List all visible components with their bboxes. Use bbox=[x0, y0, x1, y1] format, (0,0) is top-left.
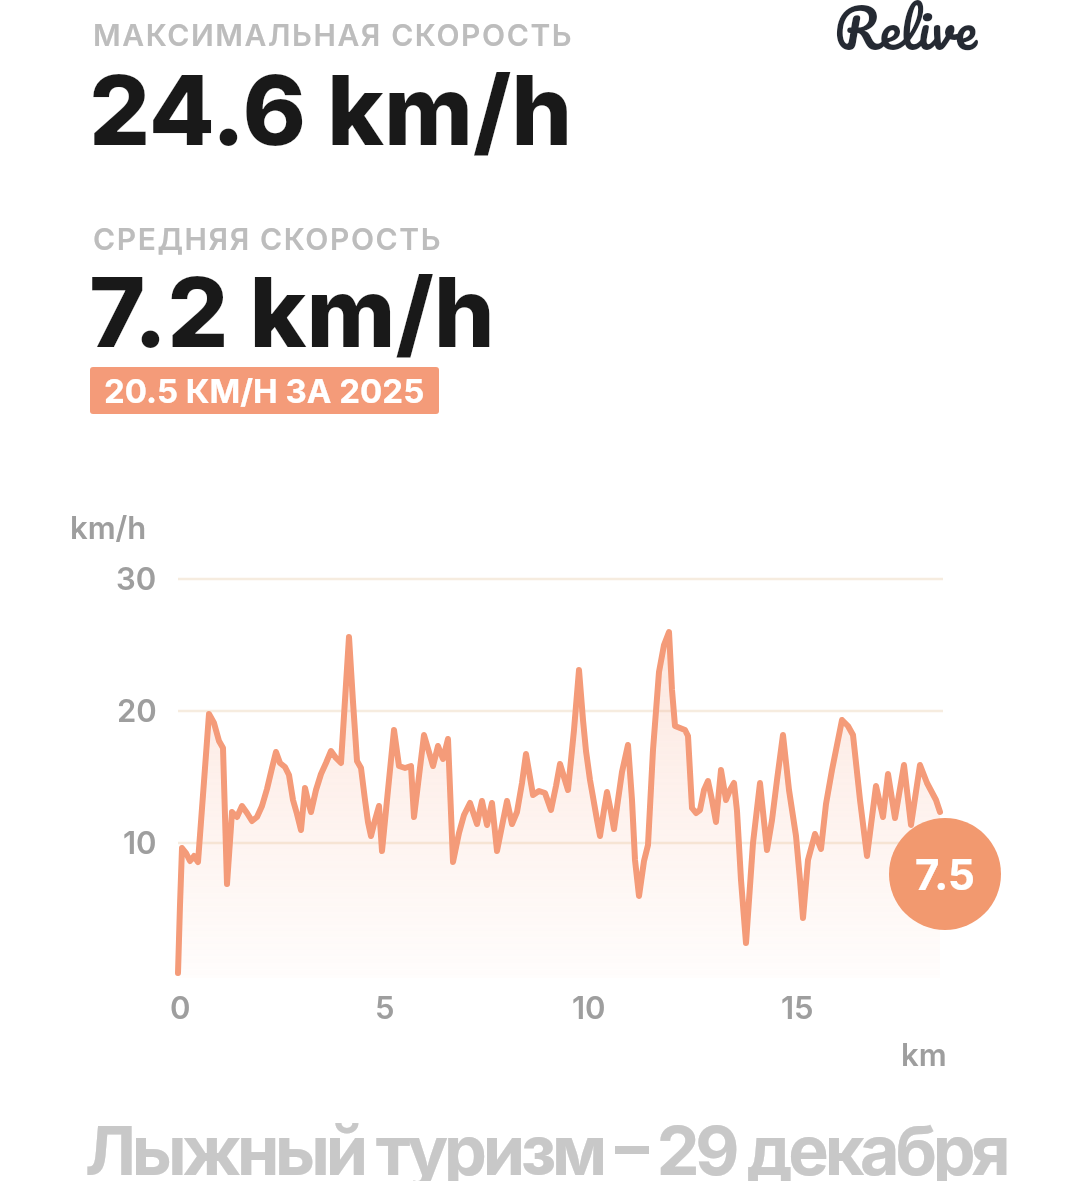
staticText: 20 bbox=[117, 692, 157, 730]
staticText: 20.5 КМ/Н ЗА 2025 bbox=[104, 371, 425, 411]
staticText: МАКСИМАЛЬНАЯ СКОРОСТЬ bbox=[93, 17, 574, 53]
staticText: 15 bbox=[781, 989, 814, 1027]
staticText: 0 bbox=[170, 989, 191, 1027]
staticText: km bbox=[901, 1036, 947, 1074]
staticText: Лыжный туризм – 29 декабря bbox=[85, 1109, 1007, 1181]
button[interactable]: 7.5 bbox=[889, 818, 1001, 930]
staticText: 7.2 km/h bbox=[89, 254, 495, 370]
staticText: 10 bbox=[572, 989, 606, 1027]
button[interactable]: 20.5 КМ/Н ЗА 2025 bbox=[90, 367, 439, 414]
staticText: 5 bbox=[375, 989, 395, 1027]
staticText: Relive bbox=[834, 0, 977, 74]
staticText: km/h bbox=[70, 509, 147, 547]
staticText: 10 bbox=[123, 824, 157, 862]
staticText: СРЕДНЯЯ СКОРОСТЬ bbox=[93, 221, 443, 257]
staticText: 7.5 bbox=[915, 849, 975, 900]
staticText: 24.6 km/h bbox=[89, 52, 573, 168]
staticText: 30 bbox=[116, 560, 157, 598]
